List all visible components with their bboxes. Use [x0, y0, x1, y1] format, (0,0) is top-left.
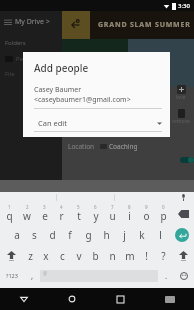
staticText: @ [43, 270, 48, 276]
button[interactable]: m [121, 245, 138, 266]
button[interactable]: 4 [53, 203, 70, 224]
button[interactable]: f [61, 224, 79, 245]
button[interactable]: ? [155, 245, 172, 266]
staticText: 4 [60, 204, 63, 210]
staticText: Type [68, 126, 100, 135]
staticText: x [43, 249, 49, 263]
staticText: Add people [34, 61, 89, 75]
other: Expand [157, 121, 162, 126]
staticText: n [109, 249, 116, 263]
staticText: 9 [145, 204, 148, 210]
button[interactable]: b [87, 245, 104, 266]
button[interactable]: a [8, 224, 25, 245]
staticText: d [49, 228, 56, 242]
staticText: w [23, 209, 31, 223]
staticText: . [165, 270, 168, 281]
staticText: z [28, 249, 33, 263]
button[interactable]: Can edit [34, 118, 162, 128]
staticText: 2 [26, 204, 29, 210]
button[interactable]: 8 [121, 203, 138, 224]
staticText: Location [68, 142, 100, 151]
button[interactable]: Voice input [172, 192, 194, 203]
staticText: a [14, 228, 20, 242]
staticText: Can edit [38, 118, 157, 128]
staticText: t [77, 209, 81, 223]
staticText: 3:30 [178, 2, 190, 10]
staticText: b [92, 249, 99, 263]
staticText: Folders [5, 39, 26, 47]
button[interactable]: v [70, 245, 87, 266]
staticText: 7 [111, 204, 114, 210]
button[interactable]: s [25, 224, 43, 245]
staticText: ?123 [6, 272, 18, 279]
button[interactable]: Toggle [180, 157, 194, 163]
button[interactable]: x [38, 245, 54, 266]
button[interactable]: Home [48, 288, 96, 310]
staticText: Coaching [109, 142, 138, 151]
staticText: Per [16, 55, 26, 63]
staticText: 3 [43, 204, 46, 210]
button[interactable]: j [115, 224, 133, 245]
button[interactable]: Back [0, 288, 48, 310]
button[interactable]: , [24, 266, 40, 285]
staticText: y [93, 209, 99, 223]
staticText: ! [145, 249, 148, 263]
button[interactable]: Recents [96, 288, 145, 310]
staticText: 0 [162, 204, 165, 210]
staticText: 6 [94, 204, 97, 210]
staticText: Casey Baumer <caseybaumer1@gmail.com> [34, 85, 162, 105]
staticText: q [6, 209, 13, 223]
staticText: p [160, 209, 167, 223]
staticText: l [159, 228, 162, 242]
staticText: v [76, 249, 82, 263]
button[interactable]: d [43, 224, 61, 245]
staticText: h [103, 228, 110, 242]
button[interactable]: 9 [138, 203, 155, 224]
button[interactable]: 0 [155, 203, 172, 224]
staticText: k [139, 228, 145, 242]
button[interactable]: . [158, 266, 174, 285]
button[interactable]: 2 [18, 203, 36, 224]
other: Back [69, 18, 83, 32]
button[interactable]: Switch keyboard [145, 288, 194, 310]
staticText: f [68, 228, 72, 242]
button[interactable]: Backspace [172, 203, 194, 224]
button[interactable]: l [151, 224, 169, 245]
staticText: , [31, 270, 34, 281]
staticText: i [128, 209, 131, 223]
button[interactable]: ?123 [0, 266, 24, 285]
staticText: File [5, 70, 15, 78]
button[interactable]: z [22, 245, 38, 266]
staticText: 5 [77, 204, 80, 210]
staticText: j [123, 228, 126, 242]
staticText: o [143, 209, 150, 223]
button[interactable]: Shift [172, 245, 194, 266]
button[interactable]: Emoji [174, 266, 194, 285]
staticText: My Drive > [15, 17, 50, 27]
button[interactable]: 7 [104, 203, 121, 224]
staticText: GRAND SLAM SUMMER [98, 20, 191, 30]
staticText: e [42, 209, 48, 223]
button[interactable]: k [133, 224, 151, 245]
button[interactable]: ! [138, 245, 155, 266]
button[interactable]: 3 [36, 203, 53, 224]
button[interactable]: 1 [0, 203, 18, 224]
button[interactable]: Shift [0, 245, 22, 266]
staticText: remove [172, 118, 190, 125]
button[interactable]: g [79, 224, 97, 245]
staticText: Image · 2.9 MB [100, 126, 146, 135]
button[interactable]: Enter [169, 224, 194, 245]
staticText: ? [161, 249, 166, 263]
staticText: 8 [128, 204, 131, 210]
staticText: love [176, 94, 186, 101]
staticText: u [109, 209, 116, 223]
staticText: s [32, 228, 37, 242]
button[interactable]: h [97, 224, 115, 245]
button[interactable]: 6 [87, 203, 104, 224]
button[interactable]: c [54, 245, 70, 266]
button[interactable]: 5 [70, 203, 87, 224]
staticText: c [60, 249, 65, 263]
button[interactable]: n [104, 245, 121, 266]
